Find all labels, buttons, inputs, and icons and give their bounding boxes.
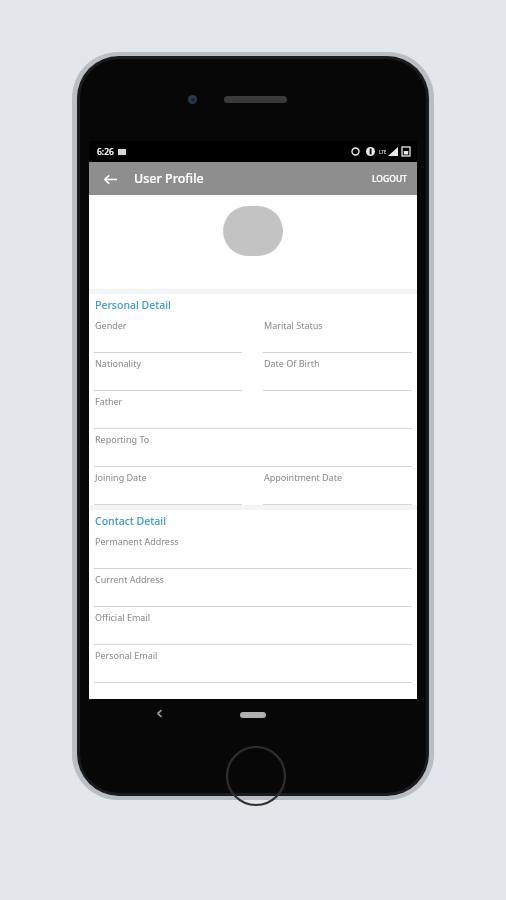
button[interactable]: Navigate back xyxy=(155,709,164,718)
button[interactable]: Father xyxy=(89,391,417,429)
button[interactable]: Nationality xyxy=(89,353,417,391)
button[interactable]: Personal Email xyxy=(89,645,417,683)
staticText: Nationality xyxy=(95,357,141,369)
button[interactable]: Permanent Address xyxy=(89,531,417,569)
button[interactable]: Joining Date xyxy=(89,467,417,505)
button[interactable]: Profile photo xyxy=(223,206,283,256)
staticText: Current Address xyxy=(95,573,164,585)
staticText: Personal Email xyxy=(95,649,158,661)
button[interactable]: Official Email xyxy=(89,607,417,645)
staticText: Gender xyxy=(95,319,127,331)
button[interactable]: Current Address xyxy=(89,569,417,607)
button[interactable]: LOGOUT xyxy=(368,167,411,191)
staticText: User Profile xyxy=(134,170,204,187)
staticText: Personal Detail xyxy=(95,298,171,312)
staticText: Marital Status xyxy=(264,319,323,331)
staticText: Contact Detail xyxy=(95,514,167,528)
button[interactable]: Reporting To xyxy=(89,429,417,467)
staticText: LOGOUT xyxy=(372,173,407,185)
staticText: Date Of Birth xyxy=(264,357,320,369)
staticText: Appointment Date xyxy=(264,471,342,483)
button[interactable]: Back xyxy=(97,166,123,192)
staticText: LTE xyxy=(379,149,387,155)
staticText: Official Email xyxy=(95,611,151,623)
staticText: 6:26 xyxy=(97,146,114,158)
button[interactable]: Home xyxy=(240,712,266,718)
staticText: Joining Date xyxy=(95,471,147,483)
staticText: Father xyxy=(95,395,123,407)
staticText: Reporting To xyxy=(95,433,150,445)
button[interactable]: Gender xyxy=(89,315,417,353)
staticText: Permanent Address xyxy=(95,535,179,547)
